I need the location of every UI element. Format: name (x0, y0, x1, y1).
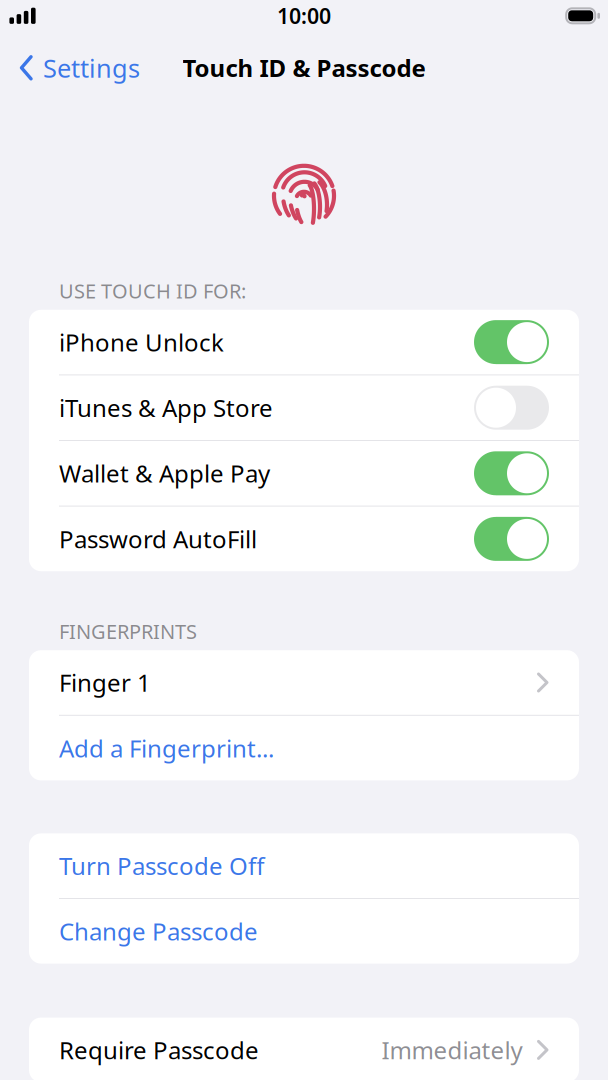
button[interactable]: Finger 1 (29, 650, 579, 715)
staticText: Settings (43, 51, 140, 85)
staticText: Turn Passcode Off (59, 850, 265, 882)
staticText: USE TOUCH ID FOR: (59, 277, 246, 304)
staticText: Wallet & Apple Pay (59, 457, 270, 489)
button[interactable]: Change Passcode (29, 899, 579, 964)
staticText: Immediately (381, 1034, 522, 1066)
button[interactable]: Add a Fingerprint... (29, 716, 579, 780)
staticText: Add a Fingerprint... (59, 732, 274, 764)
button[interactable]: iPhone Unlock (29, 310, 579, 374)
button[interactable]: Settings (0, 46, 150, 90)
staticText: Change Passcode (59, 915, 258, 947)
staticText: iTunes & App Store (59, 392, 273, 424)
staticText: FINGERPRINTS (59, 618, 197, 644)
button[interactable]: iTunes & App Store (29, 375, 579, 440)
button[interactable]: Require Passcode (29, 1018, 579, 1080)
button[interactable]: Password AutoFill (29, 507, 579, 571)
staticText: Password AutoFill (59, 523, 257, 555)
staticText: iPhone Unlock (59, 326, 224, 358)
staticText: Require Passcode (59, 1034, 259, 1066)
button[interactable]: Wallet & Apple Pay (29, 441, 579, 506)
staticText: Finger 1 (59, 667, 151, 698)
button[interactable]: Turn Passcode Off (29, 833, 579, 898)
staticText: Touch ID & Passcode (182, 52, 425, 84)
staticText: 10:00 (277, 2, 331, 30)
